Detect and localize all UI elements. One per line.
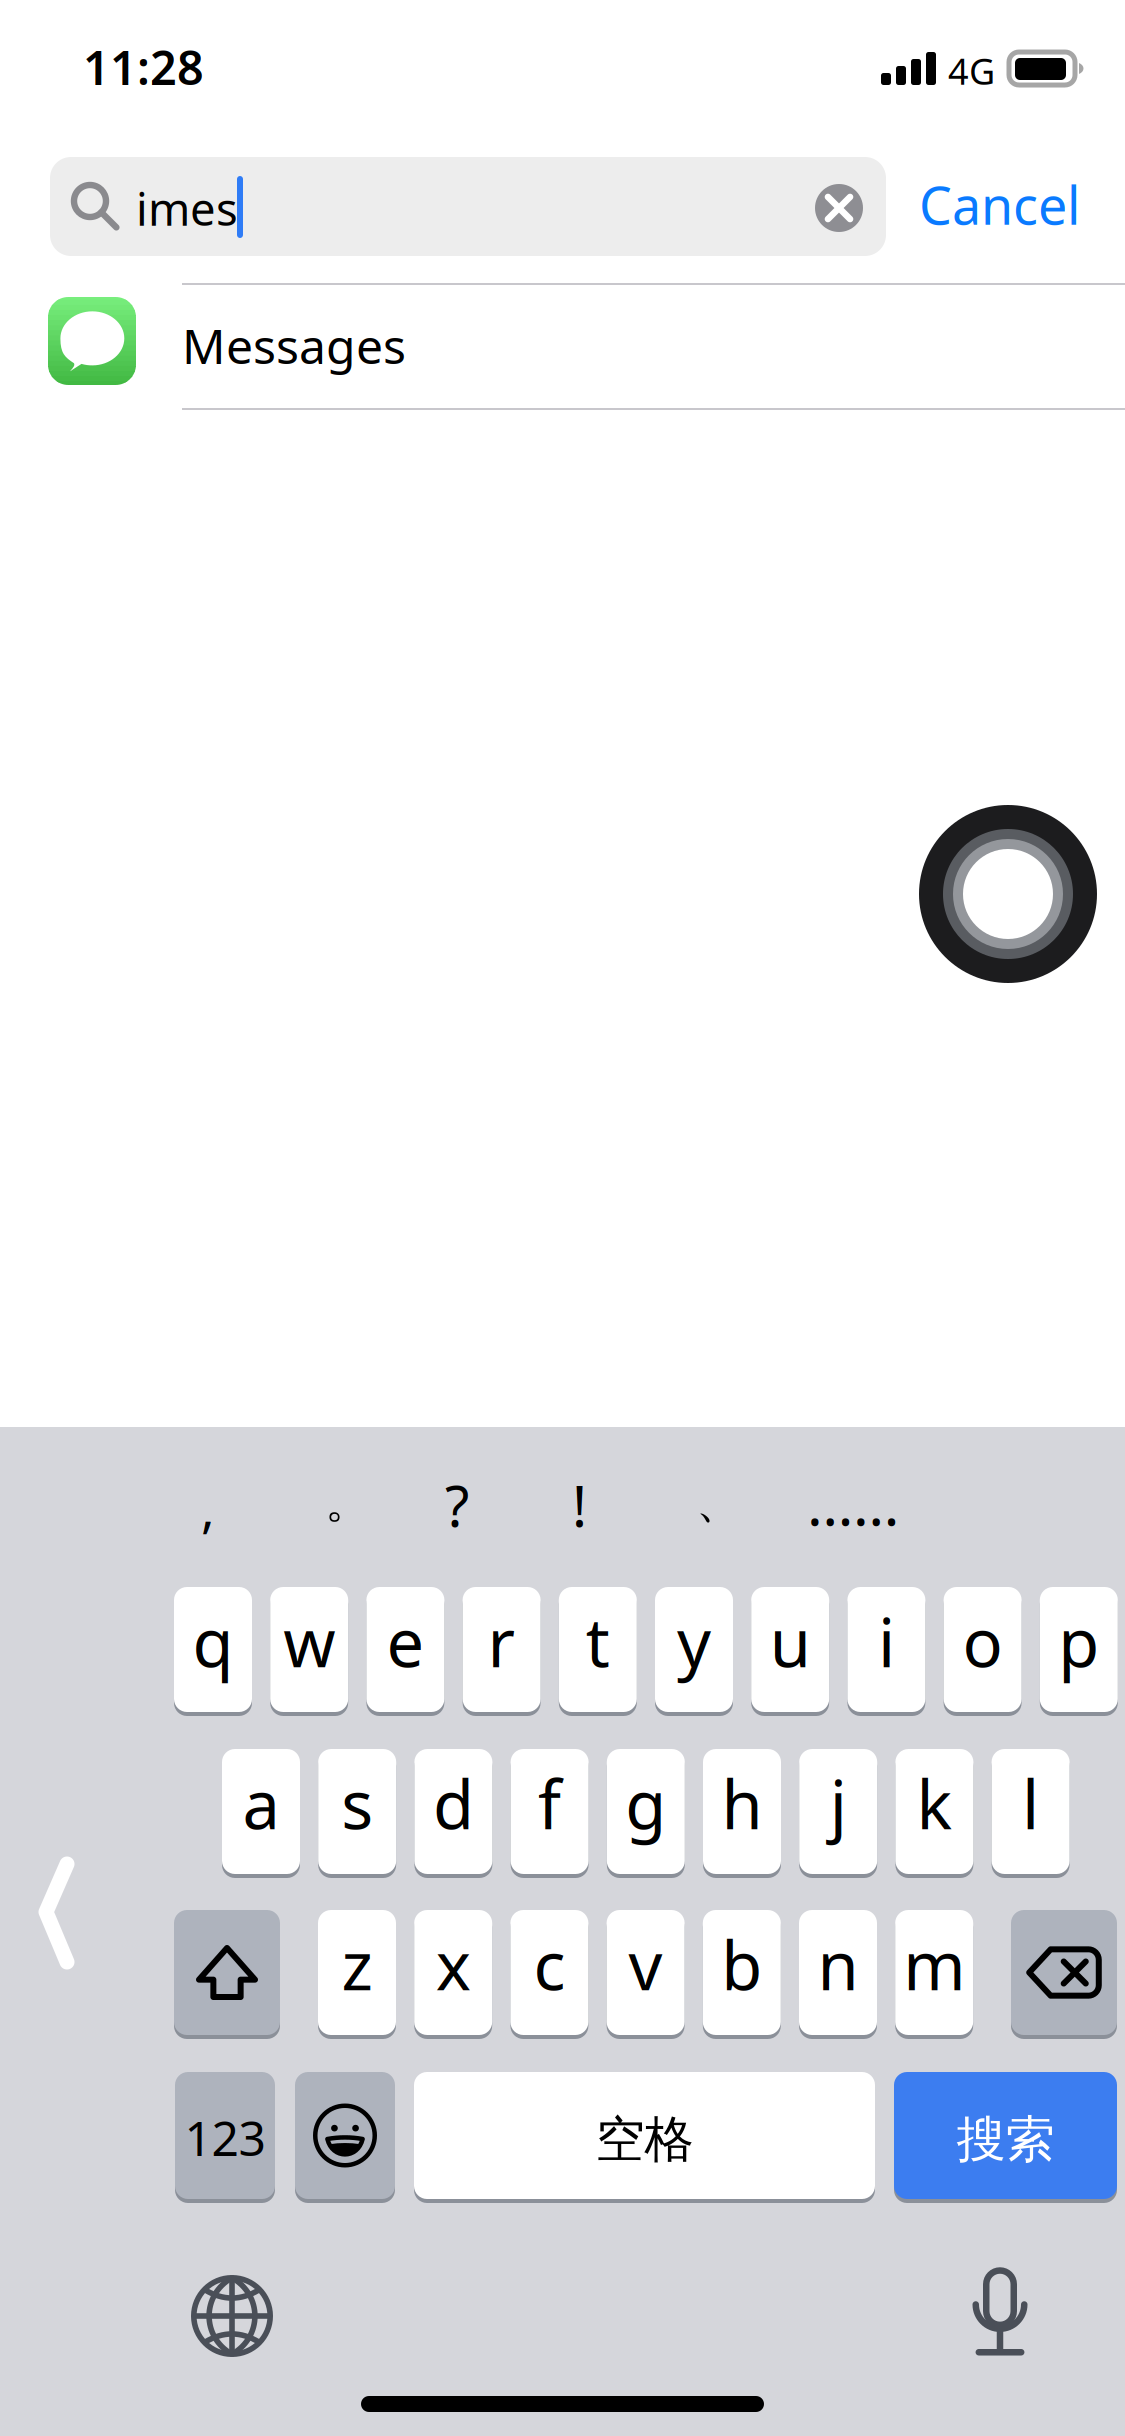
staticText: ? bbox=[445, 1468, 469, 1542]
staticText: s bbox=[341, 1759, 373, 1848]
button[interactable]: v bbox=[607, 1910, 685, 2039]
button[interactable]: i bbox=[847, 1587, 925, 1716]
button[interactable]: Cancel bbox=[919, 155, 1094, 254]
button[interactable]: 123 bbox=[175, 2072, 275, 2203]
button[interactable]: w bbox=[270, 1587, 348, 1716]
button[interactable]: e bbox=[366, 1587, 444, 1716]
button[interactable]: AssistiveTouch bbox=[919, 805, 1097, 983]
button[interactable]: t bbox=[559, 1587, 637, 1716]
staticText: 11:28 bbox=[83, 36, 204, 98]
staticText: 空格 bbox=[595, 2109, 693, 2170]
staticText: k bbox=[916, 1759, 952, 1848]
button[interactable]: Next keyboard bbox=[172, 2256, 292, 2376]
staticText: Messages bbox=[182, 314, 406, 377]
staticText: Cancel bbox=[919, 170, 1080, 239]
staticText: imes bbox=[136, 178, 238, 238]
staticText: 、 bbox=[696, 1474, 741, 1530]
staticText: y bbox=[677, 1597, 711, 1686]
staticText: m bbox=[903, 1920, 965, 2009]
button[interactable]: y bbox=[655, 1587, 733, 1716]
button[interactable]: n bbox=[799, 1910, 877, 2039]
staticText: o bbox=[963, 1597, 1003, 1686]
button[interactable]: a bbox=[222, 1749, 300, 1878]
staticText: z bbox=[341, 1920, 372, 2009]
button[interactable]: g bbox=[607, 1749, 685, 1878]
button[interactable]: u bbox=[751, 1587, 829, 1716]
staticText: x bbox=[436, 1920, 471, 2009]
button[interactable]: d bbox=[414, 1749, 492, 1878]
button[interactable]: k bbox=[895, 1749, 973, 1878]
button[interactable]: Emoji bbox=[295, 2072, 395, 2203]
staticText: ! bbox=[572, 1468, 587, 1542]
button[interactable]: x bbox=[414, 1910, 492, 2039]
staticText: a bbox=[242, 1759, 279, 1848]
staticText: …… bbox=[807, 1464, 899, 1542]
button[interactable]: 、 bbox=[696, 1474, 741, 1530]
staticText: 搜索 bbox=[956, 2109, 1054, 2170]
staticText: f bbox=[538, 1759, 561, 1848]
button[interactable]: Clear text bbox=[797, 166, 881, 250]
staticText: h bbox=[721, 1759, 762, 1848]
button[interactable]: q bbox=[174, 1587, 252, 1716]
staticText: 。 bbox=[325, 1474, 370, 1530]
staticText: l bbox=[1022, 1759, 1039, 1848]
button[interactable]: Shift bbox=[174, 1910, 280, 2039]
button[interactable]: f bbox=[511, 1749, 589, 1878]
staticText: g bbox=[625, 1759, 666, 1848]
staticText: j bbox=[830, 1759, 847, 1848]
button[interactable]: …… bbox=[807, 1464, 899, 1542]
staticText: q bbox=[192, 1597, 233, 1686]
staticText: c bbox=[533, 1920, 565, 2009]
button[interactable]: , bbox=[201, 1474, 215, 1541]
staticText: t bbox=[586, 1597, 610, 1686]
button[interactable]: l bbox=[992, 1749, 1070, 1878]
staticText: d bbox=[433, 1759, 474, 1848]
button[interactable]: Dictation bbox=[940, 2253, 1060, 2373]
button[interactable]: h bbox=[703, 1749, 781, 1878]
button[interactable]: 搜索 bbox=[894, 2072, 1117, 2203]
staticText: 4G bbox=[948, 47, 995, 95]
staticText: , bbox=[201, 1474, 215, 1541]
button[interactable]: 。 bbox=[325, 1474, 370, 1530]
button[interactable]: o bbox=[944, 1587, 1022, 1716]
staticText: u bbox=[770, 1597, 811, 1686]
button[interactable]: p bbox=[1040, 1587, 1118, 1716]
staticText: 123 bbox=[184, 2106, 265, 2169]
button[interactable]: r bbox=[463, 1587, 541, 1716]
staticText: n bbox=[817, 1920, 858, 2009]
staticText: r bbox=[488, 1597, 516, 1686]
button[interactable]: m bbox=[895, 1910, 973, 2039]
button[interactable]: 空格 bbox=[414, 2072, 875, 2203]
button[interactable]: j bbox=[799, 1749, 877, 1878]
button[interactable]: ! bbox=[572, 1468, 587, 1542]
staticText: w bbox=[283, 1597, 335, 1686]
button[interactable]: c bbox=[510, 1910, 588, 2039]
staticText: b bbox=[721, 1920, 762, 2009]
staticText: e bbox=[386, 1597, 424, 1686]
button[interactable]: z bbox=[318, 1910, 396, 2039]
staticText: p bbox=[1058, 1597, 1099, 1686]
button[interactable]: Delete bbox=[1011, 1910, 1117, 2039]
button[interactable]: ? bbox=[445, 1468, 469, 1542]
staticText: i bbox=[878, 1597, 895, 1686]
button[interactable]: b bbox=[703, 1910, 781, 2039]
button[interactable]: Messages bbox=[0, 283, 1125, 408]
button[interactable]: s bbox=[318, 1749, 396, 1878]
staticText: v bbox=[629, 1920, 663, 2009]
